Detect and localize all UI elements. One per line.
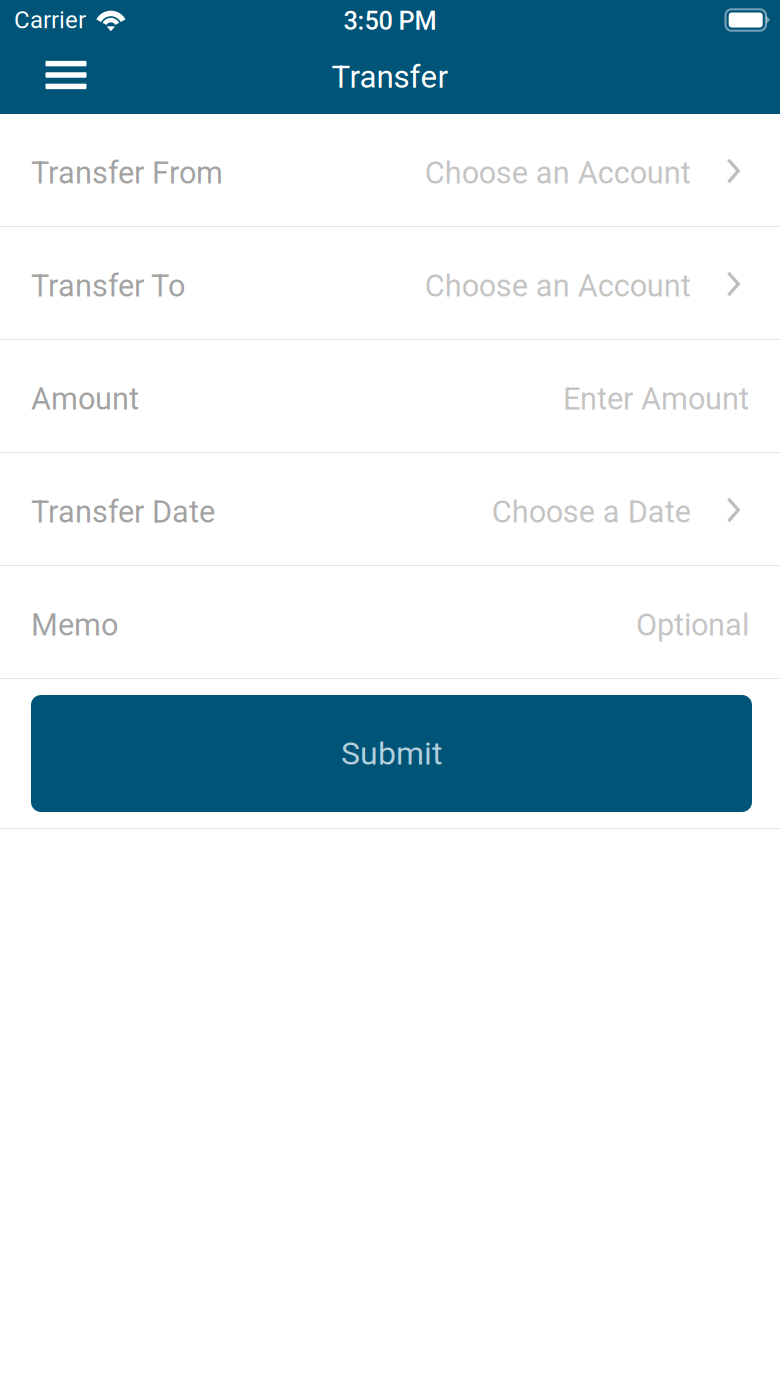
staticText: Submit <box>341 735 442 772</box>
staticText: Choose an Account <box>425 155 691 191</box>
staticText: Carrier <box>14 6 86 34</box>
button[interactable]: Transfer Date <box>0 453 780 566</box>
staticText: Transfer From <box>31 155 223 191</box>
staticText: Choose an Account <box>425 268 691 304</box>
staticText: Amount <box>31 381 139 417</box>
staticText: 3:50 PM <box>343 6 436 36</box>
staticText: Transfer <box>331 59 448 95</box>
button[interactable]: Memo <box>0 566 780 679</box>
button[interactable]: Transfer From <box>0 114 780 227</box>
staticText: Transfer Date <box>31 494 215 530</box>
button[interactable]: Amount <box>0 340 780 453</box>
staticText: Choose a Date <box>492 494 691 530</box>
staticText: Optional <box>636 607 749 643</box>
button[interactable]: Transfer To <box>0 227 780 340</box>
staticText: Transfer To <box>31 268 185 304</box>
button[interactable]: Menu <box>36 43 96 107</box>
staticText: Memo <box>31 607 118 643</box>
staticText: Enter Amount <box>563 381 749 417</box>
button[interactable]: Submit <box>31 695 752 812</box>
